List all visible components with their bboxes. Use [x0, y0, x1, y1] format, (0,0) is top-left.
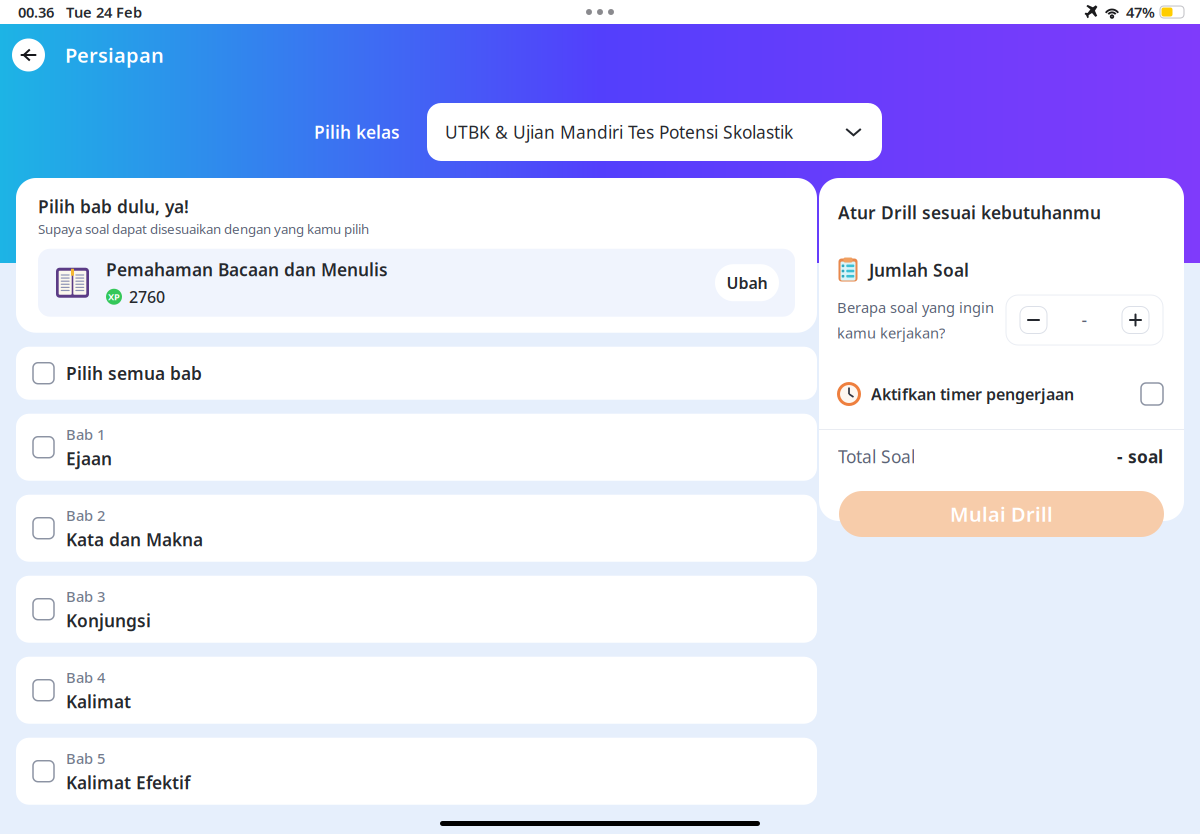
button[interactable]: Bab 2 [16, 495, 817, 562]
button[interactable]: Aktifkan timer pengerjaan [819, 377, 1184, 411]
staticText: 2760 [129, 286, 165, 307]
staticText: kamu kerjakan? [837, 323, 945, 342]
staticText: Mulai Drill [950, 501, 1053, 527]
staticText: Pilih bab dulu, ya! [38, 195, 189, 218]
button[interactable]: Bab 5 [16, 738, 817, 805]
staticText: XP [108, 290, 120, 303]
staticText: Total Soal [838, 445, 915, 468]
staticText: Kata dan Makna [66, 528, 203, 551]
staticText: Atur Drill sesuai kebutuhanmu [838, 201, 1101, 224]
staticText: Bab 4 [66, 667, 105, 687]
staticText: Ubah [726, 272, 767, 293]
staticText: Tue 24 Feb [66, 2, 142, 22]
staticText: Pemahaman Bacaan dan Menulis [106, 258, 388, 281]
button[interactable]: Bab 1 [16, 414, 817, 481]
button[interactable]: Bab 4 [16, 657, 817, 724]
staticText: Jumlah Soal [869, 258, 969, 281]
staticText: 00.36 [18, 2, 54, 22]
staticText: Bab 5 [66, 748, 105, 768]
button[interactable]: Bab 3 [16, 576, 817, 643]
staticText: Bab 3 [66, 586, 105, 606]
button[interactable]: UTBK & Ujian Mandiri Tes Potensi Skolast… [427, 103, 882, 161]
staticText: Berapa soal yang ingin [837, 297, 994, 317]
staticText: Konjungsi [66, 609, 151, 632]
button[interactable]: Kurangi [1020, 306, 1047, 333]
staticText: Ejaan [66, 447, 112, 470]
staticText: - soal [1117, 445, 1163, 468]
staticText: Kalimat Efektif [66, 771, 190, 794]
button[interactable]: Back [12, 38, 45, 71]
button[interactable]: Tambah [1122, 306, 1149, 333]
button[interactable]: Mulai Drill [839, 491, 1164, 537]
button[interactable]: Ubah [715, 264, 779, 301]
staticText: Bab 1 [66, 424, 105, 444]
staticText: Aktifkan timer pengerjaan [871, 383, 1074, 405]
button[interactable]: Pilih semua bab [16, 347, 817, 400]
staticText: Pilih kelas [314, 120, 400, 143]
staticText: Supaya soal dapat disesuaikan dengan yan… [38, 220, 369, 238]
staticText: Pilih semua bab [66, 362, 202, 385]
staticText: - [1081, 308, 1087, 331]
staticText: UTBK & Ujian Mandiri Tes Potensi Skolast… [445, 120, 793, 143]
staticText: Kalimat [66, 690, 131, 713]
staticText: Bab 2 [66, 505, 105, 525]
staticText: 47% [1126, 2, 1155, 22]
staticText: Persiapan [65, 42, 164, 68]
